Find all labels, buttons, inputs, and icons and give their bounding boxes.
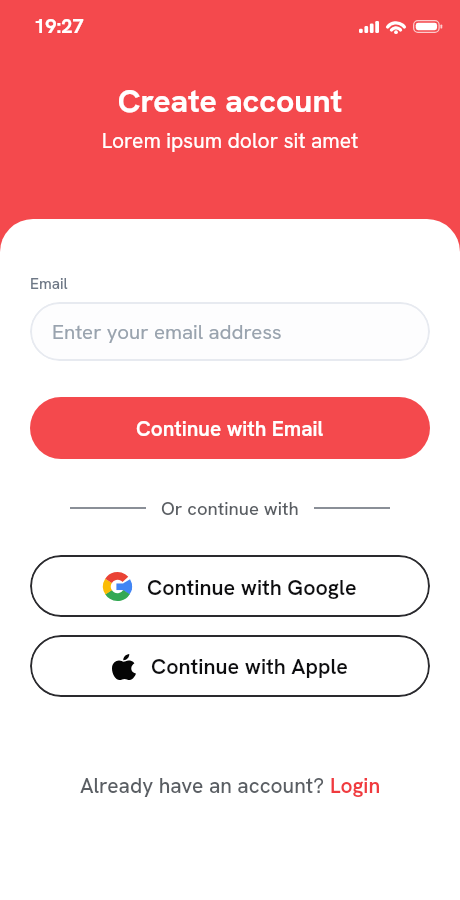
staticText: Create account (0, 80, 460, 122)
staticText: Already have an account? (80, 772, 330, 799)
staticText: Continue with Apple (151, 652, 348, 680)
staticText: Login (330, 772, 381, 799)
button[interactable]: Enter your email address (30, 302, 430, 361)
staticText: 19:27 (34, 13, 84, 39)
staticText: Email (30, 274, 68, 294)
button[interactable]: Continue with Apple (30, 635, 430, 697)
button[interactable]: Continue with Google (30, 555, 430, 617)
button[interactable]: Continue with Email (30, 397, 430, 459)
staticText: Lorem ipsum dolor sit amet (0, 127, 460, 154)
staticText: Continue with Email (136, 415, 324, 442)
button[interactable]: Login (330, 770, 381, 801)
staticText: Continue with Google (147, 573, 357, 601)
staticText: Enter your email address (52, 318, 282, 345)
staticText: Or continue with (161, 496, 299, 520)
